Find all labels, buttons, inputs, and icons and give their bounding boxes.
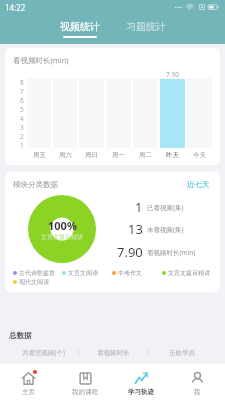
staticText: 近七天	[187, 180, 210, 189]
staticText: 1	[20, 141, 24, 148]
staticText: 今天	[193, 151, 206, 159]
staticText: 我的课程	[72, 388, 98, 396]
staticText: 周一	[112, 151, 125, 159]
button[interactable]: 学习轨迹	[113, 364, 169, 400]
staticText: 2	[20, 132, 24, 141]
staticText: 6	[20, 96, 24, 105]
button[interactable]: 习题统计	[120, 18, 172, 40]
staticText: 学习轨迹	[128, 388, 154, 396]
staticText: 5	[20, 105, 24, 114]
staticText: 100%	[48, 218, 77, 233]
button[interactable]: 看视频时长(min)	[5, 48, 220, 165]
staticText: 7.90	[166, 70, 179, 78]
staticText: 文言文阅读	[68, 269, 98, 277]
staticText: 总数据	[9, 331, 32, 340]
staticText: 看视频时长	[97, 349, 130, 357]
button[interactable]: 主页	[0, 364, 57, 400]
other: 我的课程	[78, 371, 93, 386]
button[interactable]: 击败学员	[148, 349, 216, 357]
staticText: 周五	[33, 151, 46, 159]
staticText: 8	[20, 78, 24, 87]
staticText: 击败学员	[169, 349, 195, 357]
staticText: 13	[128, 220, 143, 238]
staticText: 看视频时长(min)	[147, 248, 196, 257]
button[interactable]: 共看完视频(个)	[9, 348, 78, 357]
staticText: 昨天	[166, 151, 179, 159]
staticText: 文言文篇目精讲	[41, 233, 83, 241]
staticText: 现代文阅读	[19, 278, 49, 286]
staticText: 7	[20, 87, 24, 96]
staticText: 未看视频(集)	[147, 225, 184, 234]
staticText: 共看完视频(个)	[22, 348, 65, 357]
button[interactable]: 我	[169, 364, 225, 400]
staticText: 文言文篇目精讲	[168, 269, 210, 277]
staticText: 1	[135, 198, 143, 216]
button[interactable]: 视频统计	[54, 18, 106, 40]
staticText: 主页	[22, 388, 35, 396]
staticText: 中考作文	[118, 269, 142, 277]
button[interactable]: 看视频时长	[79, 349, 147, 357]
staticText: 我	[194, 388, 201, 396]
staticText: 已看视频(集)	[147, 203, 184, 212]
staticText: 7.90	[117, 243, 143, 261]
staticText: 视频统计	[60, 20, 100, 33]
other: 主页	[21, 371, 36, 386]
staticText: 14:22	[5, 2, 26, 13]
staticText: 模块分类数据	[13, 180, 58, 189]
staticText: 看视频时长(min)	[13, 55, 69, 65]
staticText: 3	[20, 123, 24, 132]
staticText: 周日	[85, 151, 98, 159]
other: 我	[190, 371, 205, 386]
button[interactable]: 我的课程	[57, 364, 113, 400]
button[interactable]: 近七天	[185, 178, 212, 191]
other: 学习轨迹	[134, 371, 149, 386]
staticText: 周二	[139, 151, 152, 159]
button[interactable]: 模块分类数据	[5, 172, 220, 292]
staticText: 习题统计	[126, 20, 166, 33]
staticText: 周六	[59, 151, 72, 159]
staticText: 古代诗歌鉴赏	[19, 269, 55, 277]
staticText: 4	[20, 114, 24, 123]
